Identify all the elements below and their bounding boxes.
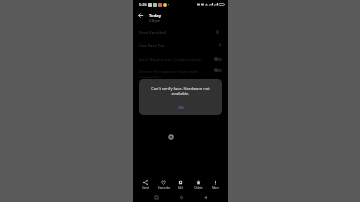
button[interactable]: Favourite (157, 180, 170, 190)
button[interactable]: Delete (192, 180, 205, 190)
button[interactable]: More (209, 180, 222, 190)
button[interactable]: Use Face For (133, 40, 228, 49)
button[interactable]: Face Enrolled (133, 27, 228, 36)
staticText: 5:36 pm (149, 19, 160, 23)
staticText: Today (149, 13, 162, 19)
staticText: Send (142, 186, 149, 190)
button[interactable]: Auto Brightness Compensation (133, 54, 228, 63)
button[interactable]: Back (202, 194, 208, 200)
staticText: Device Recognizes Faces with Closed Eyes (139, 68, 203, 78)
staticText: OK (178, 105, 184, 111)
button[interactable]: Device Recognizes Faces with Closed Eyes (133, 64, 228, 78)
staticText: Delete (194, 186, 203, 190)
staticText: Can't verify face. Hardware not availabl… (145, 86, 216, 96)
button[interactable]: Edit (174, 180, 187, 190)
button[interactable]: OK (174, 103, 188, 113)
staticText: Favourite (158, 186, 170, 190)
staticText: Auto Brightness Compensation (139, 56, 202, 62)
staticText: Use Face For (139, 42, 165, 48)
button[interactable]: Back (136, 11, 145, 20)
button[interactable]: Send (139, 180, 152, 190)
button[interactable]: Toggle (214, 68, 222, 72)
button[interactable]: Recents (153, 194, 159, 200)
button[interactable]: Home (178, 194, 184, 200)
staticText: Face Enrolled (139, 29, 166, 35)
staticText: Edit (178, 186, 183, 190)
staticText: More (212, 186, 219, 190)
staticText: 5:36 (139, 2, 147, 7)
button[interactable]: Toggle (214, 57, 222, 61)
